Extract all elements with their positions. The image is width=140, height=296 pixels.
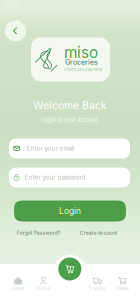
staticText: Profile (36, 286, 50, 291)
button[interactable]: Forgot Password? (17, 230, 61, 236)
staticText: Welcome Back (33, 99, 107, 112)
button[interactable]: Create Account (80, 230, 118, 236)
staticText: Tracking (88, 286, 106, 291)
button[interactable]: Profile (30, 274, 56, 294)
button[interactable]: Basket (109, 274, 135, 294)
staticText: Create Account (80, 230, 118, 236)
button[interactable]: Cart (58, 257, 81, 280)
button[interactable]: Home (5, 274, 31, 294)
staticText: 9:22 (5, 3, 19, 10)
button[interactable]: Tracking (84, 274, 110, 294)
staticText: Groceries (65, 58, 98, 66)
staticText: Enter your password (24, 174, 85, 181)
button[interactable]: Back (5, 20, 26, 41)
staticText: miso (64, 43, 98, 62)
staticText: Login (59, 206, 81, 216)
staticText: Forgot Password? (17, 230, 61, 236)
staticText: Login to your account (42, 116, 98, 123)
staticText: Enter your email (26, 145, 73, 152)
staticText: Grocery just a tap away (63, 67, 102, 72)
staticText: Home (12, 286, 24, 291)
staticText: Basket (116, 286, 128, 291)
button[interactable]: Login (14, 200, 126, 221)
